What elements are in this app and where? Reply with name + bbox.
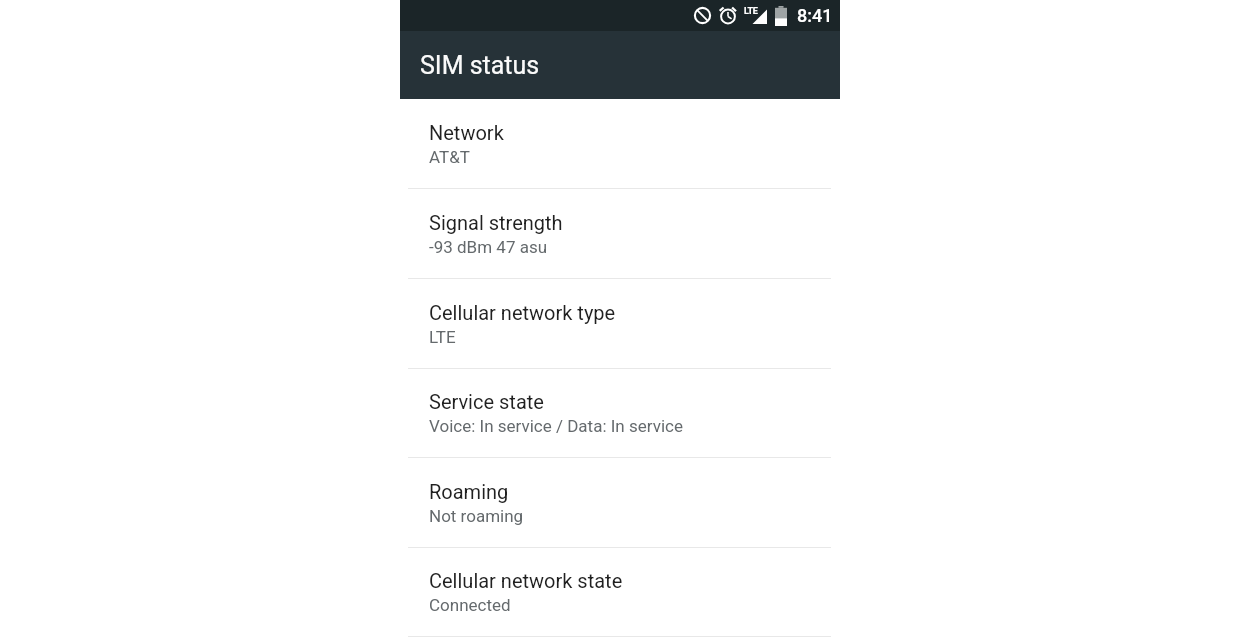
staticText: LTE (429, 327, 456, 347)
other: Alarm set (719, 6, 737, 26)
staticText: Cellular network state (429, 569, 623, 592)
staticText: SIM status (420, 51, 540, 80)
staticText: Signal strength (429, 211, 563, 234)
button[interactable]: Signal strength (400, 189, 840, 279)
button[interactable]: Network (400, 99, 840, 189)
button[interactable]: SIM status (400, 31, 840, 99)
staticText: 8:41 (797, 5, 833, 26)
button[interactable]: Roaming (400, 458, 840, 548)
staticText: LTE (744, 6, 758, 17)
other: Battery (775, 6, 787, 26)
staticText: Cellular network type (429, 301, 616, 324)
button[interactable]: Cellular network type (400, 279, 840, 369)
staticText: Service state (429, 390, 544, 413)
staticText: Not roaming (429, 506, 524, 526)
staticText: Roaming (429, 480, 509, 503)
staticText: AT&T (429, 147, 470, 167)
other: Do not disturb on (694, 6, 711, 26)
staticText: Voice: In service / Data: In service (429, 416, 683, 436)
staticText: Network (429, 121, 504, 144)
button[interactable]: Service state (400, 369, 840, 458)
staticText: Connected (429, 595, 511, 615)
staticText: -93 dBm 47 asu (429, 237, 548, 257)
other: LTE signal full (741, 5, 767, 27)
button[interactable]: Cellular network state (400, 548, 840, 637)
